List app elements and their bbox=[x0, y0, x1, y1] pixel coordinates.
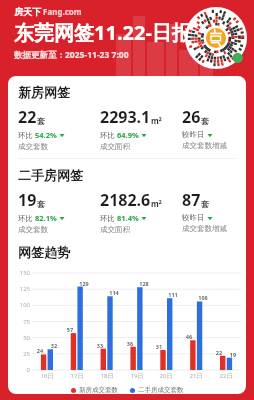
staticText: 成交套数 bbox=[18, 142, 48, 151]
staticText: m² bbox=[151, 115, 162, 126]
staticText: 网签趋势 bbox=[18, 244, 70, 260]
staticText: 环比 bbox=[18, 130, 35, 140]
staticText: 18日 bbox=[95, 372, 119, 380]
staticText: 54.2% bbox=[35, 130, 57, 140]
staticText: 22 bbox=[213, 349, 225, 356]
staticText: 19 bbox=[18, 189, 37, 211]
staticText: 二手房成交套数 bbox=[138, 386, 184, 394]
staticText: 21日 bbox=[184, 372, 208, 380]
staticText: 75 bbox=[10, 318, 30, 326]
staticText: 50 bbox=[10, 334, 30, 342]
staticText: 81.4% bbox=[117, 213, 139, 223]
staticText: 套 bbox=[37, 199, 45, 209]
staticText: 成交套数 bbox=[18, 225, 48, 234]
staticText: 成交套数增减 bbox=[182, 141, 227, 150]
button[interactable]: 87 bbox=[182, 189, 240, 233]
staticText: 111 bbox=[167, 291, 179, 298]
staticText: 150 bbox=[10, 269, 30, 277]
staticText: 16日 bbox=[35, 372, 59, 380]
staticText: 106 bbox=[197, 294, 209, 301]
staticText: 22 bbox=[18, 106, 37, 128]
staticText: 2182.6 bbox=[100, 189, 151, 211]
staticText: 0 bbox=[10, 366, 30, 374]
staticText: 33 bbox=[94, 342, 106, 349]
staticText: m² bbox=[151, 198, 162, 209]
staticText: 较昨日 bbox=[182, 213, 205, 222]
staticText: 环比 bbox=[18, 213, 35, 223]
staticText: 25 bbox=[10, 350, 30, 358]
staticText: 26 bbox=[182, 106, 201, 128]
staticText: 82.1% bbox=[35, 213, 57, 223]
button[interactable]: 22 bbox=[18, 106, 100, 151]
button[interactable]: 二手房成交套数 bbox=[130, 386, 184, 394]
staticText: 32 bbox=[48, 342, 60, 349]
staticText: 87 bbox=[182, 189, 201, 211]
staticText: 100 bbox=[10, 301, 30, 309]
staticText: 2293.1 bbox=[100, 106, 151, 128]
staticText: 46 bbox=[183, 333, 195, 340]
staticText: 较昨日 bbox=[182, 130, 205, 139]
button[interactable]: 26 bbox=[182, 106, 240, 150]
button[interactable]: 2293.1 bbox=[100, 106, 182, 151]
staticText: Fang.com bbox=[43, 6, 82, 17]
staticText: 64.9% bbox=[117, 130, 139, 140]
staticText: 数据更新至：2025-11-23 7:00 bbox=[14, 49, 129, 61]
button[interactable]: 2182.6 bbox=[100, 189, 182, 234]
staticText: 房天下 bbox=[14, 6, 41, 17]
staticText: 24 bbox=[34, 347, 46, 354]
staticText: 57 bbox=[64, 326, 76, 333]
staticText: 新房成交套数 bbox=[79, 386, 118, 394]
staticText: 成交面积 bbox=[100, 142, 130, 151]
staticText: 套 bbox=[37, 116, 45, 126]
staticText: 新房网签 bbox=[18, 84, 70, 100]
staticText: 套 bbox=[201, 199, 209, 209]
staticText: 成交面积 bbox=[100, 225, 130, 234]
staticText: 31 bbox=[153, 343, 165, 350]
staticText: 128 bbox=[138, 280, 150, 287]
staticText: 22日 bbox=[214, 372, 238, 380]
staticText: 114 bbox=[108, 289, 120, 296]
staticText: 环比 bbox=[100, 130, 117, 140]
staticText: 17日 bbox=[65, 372, 89, 380]
staticText: 20日 bbox=[154, 372, 178, 380]
staticText: 环比 bbox=[100, 213, 117, 223]
staticText: 东莞网签11.22-日报 bbox=[14, 19, 192, 46]
staticText: 套 bbox=[201, 116, 209, 126]
staticText: 129 bbox=[78, 280, 90, 287]
staticText: 19日 bbox=[125, 372, 149, 380]
staticText: 二手房网签 bbox=[18, 167, 83, 183]
button[interactable]: 房天下 QR badge bbox=[185, 7, 247, 69]
staticText: 36 bbox=[124, 340, 136, 347]
staticText: 19 bbox=[227, 351, 239, 358]
staticText: 成交套数增减 bbox=[182, 224, 227, 233]
staticText: 125 bbox=[10, 285, 30, 293]
button[interactable]: 19 bbox=[18, 189, 100, 234]
button[interactable]: 新房成交套数 bbox=[71, 386, 118, 394]
